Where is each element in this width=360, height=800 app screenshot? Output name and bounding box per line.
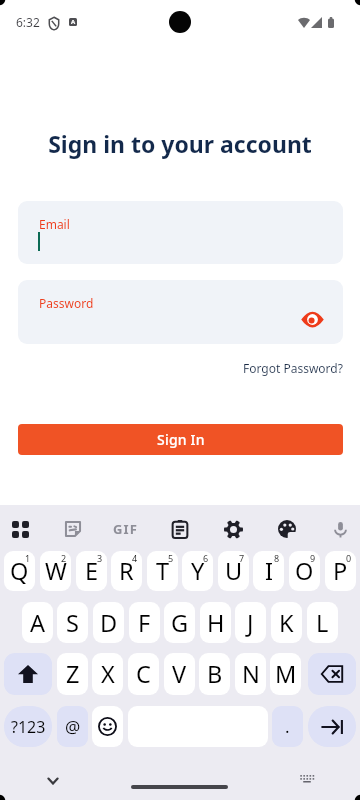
staticText: 8 [274,552,280,564]
staticText: G [171,607,189,639]
staticText: 5 [168,552,174,564]
button[interactable]: R [111,551,142,591]
button[interactable]: H [200,602,231,643]
staticText: @ [65,715,81,738]
button[interactable]: B [199,653,230,695]
button[interactable]: Show password [294,301,330,337]
button[interactable]: I [253,551,284,591]
staticText: Q [10,555,29,587]
button[interactable]: Shift [4,653,52,695]
staticText: Forgot Password? [243,360,343,376]
staticText: 7 [239,552,245,564]
staticText: M [275,658,297,690]
button[interactable]: L [307,602,338,643]
button[interactable]: T [147,551,178,591]
staticText: N [242,658,260,690]
staticText: Y [191,555,205,587]
button[interactable]: Emoji [92,706,123,747]
staticText: F [138,607,151,639]
staticText: Password [39,295,94,311]
button[interactable]: M [270,653,301,695]
button[interactable]: E [76,551,107,591]
staticText: Sign In [157,430,205,449]
button[interactable]: A [22,602,53,643]
button[interactable]: Backspace [308,653,356,695]
button[interactable]: P [325,551,356,591]
button[interactable]: U [218,551,249,591]
button[interactable]: X [92,653,123,695]
button[interactable]: W [40,551,71,591]
staticText: 1 [25,552,31,564]
button[interactable]: Z [57,653,88,695]
button[interactable]: Forgot Password? [233,358,343,378]
staticText: 6:32 [16,14,40,30]
button[interactable]: J [235,602,266,643]
staticText: Sign in to your account [0,128,360,159]
staticText: L [316,607,329,639]
staticText: R [119,555,134,587]
button[interactable]: Apps [0,508,41,550]
button[interactable]: Password [18,280,343,344]
staticText: 0 [346,552,352,564]
button[interactable]: O [289,551,320,591]
button[interactable]: Settings [212,508,254,550]
staticText: S [66,607,79,639]
staticText: J [247,607,254,639]
staticText: A [30,607,46,639]
staticText: X [101,658,115,690]
button[interactable]: K [271,602,302,643]
staticText: 2 [61,552,67,564]
button[interactable]: . [272,706,303,747]
staticText: B [207,658,223,690]
staticText: Z [66,658,80,690]
staticText: 6 [203,552,209,564]
button[interactable]: G [164,602,195,643]
button[interactable]: @ [57,706,88,747]
staticText: O [295,555,314,587]
staticText: Email [39,216,70,232]
button[interactable]: Themes [266,508,308,550]
button[interactable]: Enter [308,706,356,747]
button[interactable]: V [164,653,195,695]
button[interactable]: Stickers [52,508,94,550]
staticText: D [100,607,118,639]
button[interactable]: C [128,653,159,695]
staticText: E [85,555,99,587]
staticText: P [333,555,348,587]
staticText: K [279,607,294,639]
button[interactable]: GIF [105,508,147,550]
button[interactable]: N [235,653,266,695]
button[interactable]: Email [18,201,343,264]
staticText: . [285,715,290,738]
staticText: W [45,555,67,587]
button[interactable]: D [93,602,124,643]
button[interactable]: Sign In [18,424,343,455]
staticText: T [156,555,170,587]
button[interactable]: F [129,602,160,643]
button[interactable]: Voice input [319,508,360,550]
button[interactable]: Hide keyboard [40,768,66,794]
staticText: ?123 [11,716,46,738]
button[interactable]: Q [4,551,35,591]
button[interactable]: Resize keyboard [293,765,320,792]
staticText: C [136,658,151,690]
staticText: A [71,18,76,26]
button[interactable]: ?123 [4,706,52,747]
staticText: 9 [310,552,316,564]
button[interactable]: S [57,602,88,643]
staticText: U [225,555,243,587]
staticText: 3 [97,552,103,564]
staticText: 4 [132,552,138,564]
staticText: V [172,658,187,690]
staticText: I [265,555,273,587]
staticText: GIF [113,520,139,538]
button[interactable]: Y [182,551,213,591]
staticText: H [207,607,225,639]
button[interactable]: Clipboard [159,508,201,550]
